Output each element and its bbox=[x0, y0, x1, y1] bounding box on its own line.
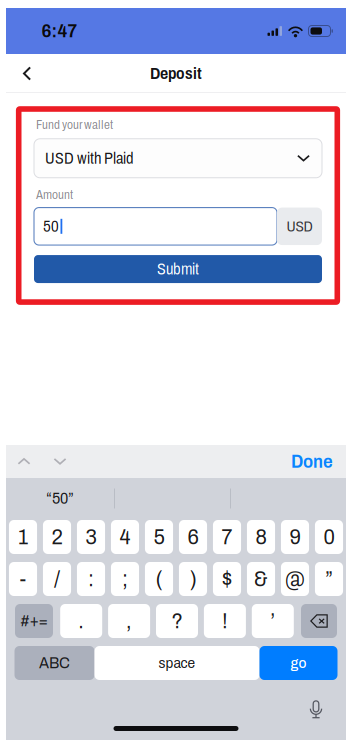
button[interactable]: Done bbox=[278, 445, 346, 477]
button[interactable]: 6 bbox=[179, 520, 207, 554]
staticText: 2 bbox=[51, 525, 62, 549]
staticText: Amount bbox=[36, 188, 73, 202]
button[interactable]: Back bbox=[6, 54, 48, 92]
staticText: - bbox=[19, 567, 26, 591]
staticText: 5 bbox=[153, 525, 164, 549]
staticText: 9 bbox=[289, 525, 300, 549]
staticText: Deposit bbox=[150, 64, 202, 82]
staticText: “50” bbox=[46, 490, 74, 507]
staticText: : bbox=[88, 567, 94, 591]
button[interactable]: go bbox=[259, 646, 337, 680]
button[interactable]: “50” bbox=[6, 478, 114, 519]
staticText: ( bbox=[155, 567, 162, 591]
button[interactable]: 5 bbox=[145, 520, 173, 554]
button[interactable]: / bbox=[43, 562, 71, 596]
staticText: ? bbox=[171, 609, 182, 633]
staticText: 50 bbox=[43, 218, 59, 235]
staticText: 0 bbox=[323, 525, 334, 549]
staticText: , bbox=[126, 609, 132, 633]
staticText: Done bbox=[291, 451, 333, 472]
button[interactable]: space bbox=[94, 646, 259, 680]
button[interactable]: 8 bbox=[247, 520, 275, 554]
staticText: ) bbox=[189, 567, 196, 591]
staticText: go bbox=[290, 655, 306, 671]
button[interactable]: USD with Plaid bbox=[34, 139, 322, 178]
staticText: USD bbox=[286, 218, 312, 235]
button[interactable]: ? bbox=[156, 604, 198, 638]
staticText: / bbox=[54, 567, 60, 591]
staticText: ABC bbox=[39, 654, 70, 672]
staticText: 6:47 bbox=[41, 21, 77, 41]
button[interactable]: 9 bbox=[281, 520, 309, 554]
button[interactable]: 3 bbox=[77, 520, 105, 554]
button[interactable]: Submit bbox=[34, 255, 322, 283]
button[interactable]: @ bbox=[281, 562, 309, 596]
button[interactable]: & bbox=[247, 562, 275, 596]
staticText: 7 bbox=[221, 525, 232, 549]
button[interactable]: $ bbox=[213, 562, 241, 596]
staticText: 6 bbox=[187, 525, 198, 549]
button[interactable]: 0 bbox=[315, 520, 343, 554]
staticText: @ bbox=[285, 567, 305, 591]
staticText: ; bbox=[122, 567, 128, 591]
button[interactable]: 7 bbox=[213, 520, 241, 554]
staticText: . bbox=[78, 609, 84, 633]
staticText: Submit bbox=[157, 260, 199, 278]
staticText: ” bbox=[325, 567, 333, 591]
button[interactable]: 4 bbox=[111, 520, 139, 554]
button[interactable]: : bbox=[77, 562, 105, 596]
button[interactable]: ! bbox=[204, 604, 246, 638]
button[interactable]: Delete bbox=[301, 604, 337, 638]
button[interactable]: Dictation bbox=[298, 695, 334, 725]
button[interactable]: ABC bbox=[14, 646, 94, 680]
button[interactable]: Previous field bbox=[6, 445, 42, 477]
button[interactable]: #+= bbox=[15, 604, 53, 638]
staticText: Fund your wallet bbox=[36, 118, 113, 132]
button[interactable]: ’ bbox=[252, 604, 294, 638]
button[interactable]: . bbox=[60, 604, 102, 638]
button[interactable]: 2 bbox=[43, 520, 71, 554]
staticText: space bbox=[158, 655, 195, 671]
button[interactable]: ( bbox=[145, 562, 173, 596]
button[interactable]: ) bbox=[179, 562, 207, 596]
staticText: ! bbox=[222, 609, 228, 633]
button[interactable]: Next field bbox=[42, 445, 78, 477]
staticText: 1 bbox=[18, 525, 28, 549]
staticText: 8 bbox=[255, 525, 266, 549]
staticText: 4 bbox=[119, 525, 130, 549]
button[interactable]: ; bbox=[111, 562, 139, 596]
staticText: & bbox=[254, 567, 268, 591]
staticText: USD with Plaid bbox=[45, 150, 134, 167]
button[interactable]: ” bbox=[315, 562, 343, 596]
staticText: $ bbox=[222, 567, 232, 591]
button[interactable]: , bbox=[108, 604, 150, 638]
staticText: 3 bbox=[85, 525, 96, 549]
button[interactable]: 1 bbox=[9, 520, 37, 554]
staticText: #+= bbox=[20, 612, 47, 630]
button[interactable]: - bbox=[9, 562, 37, 596]
staticText: ’ bbox=[270, 609, 275, 633]
